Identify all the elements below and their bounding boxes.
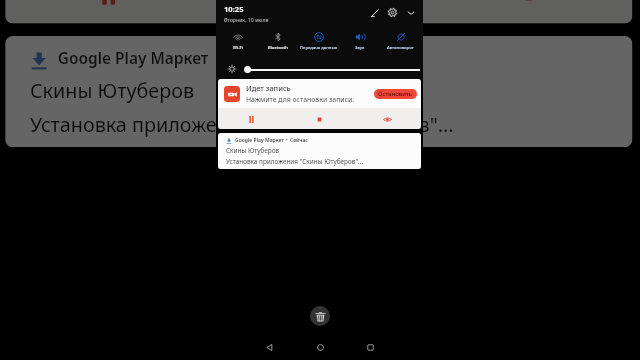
button[interactable]: Автоповорот [380, 32, 421, 51]
staticText: Скины Ютуберов [226, 146, 280, 155]
staticText: Google Play Маркет [235, 137, 284, 144]
staticText: 10:25 [224, 4, 244, 14]
staticText: Остановить [378, 90, 413, 98]
button[interactable]: Recents [359, 336, 381, 358]
button[interactable]: Передача данных [298, 32, 339, 51]
staticText: Нажмите для остановки записи. [246, 95, 355, 104]
button[interactable]: Collapse [404, 6, 417, 19]
staticText: Установка приложения "Скины Ютуберов"... [30, 110, 456, 138]
staticText: Вторник, 10 июля [224, 16, 269, 23]
staticText: Автоповорот [387, 45, 414, 51]
button[interactable]: Settings [386, 6, 399, 19]
button[interactable]: Stop [212, 0, 422, 14]
button[interactable]: Pause [218, 112, 285, 126]
button[interactable]: Остановить [374, 89, 417, 99]
staticText: Bluetooth [268, 45, 288, 51]
button[interactable]: Google Play Маркет [5, 36, 632, 147]
staticText: Сейчас [290, 137, 308, 144]
button[interactable]: Stop [285, 112, 353, 126]
staticText: Wi-Fi [233, 45, 243, 51]
button[interactable]: Back [258, 336, 280, 358]
staticText: • [215, 48, 221, 70]
button[interactable]: Bluetooth [258, 32, 298, 51]
button[interactable]: Home [309, 336, 331, 358]
staticText: Передача данных [300, 45, 338, 51]
staticText: Идет запись [246, 83, 291, 93]
staticText: Установка приложения "Скины Ютуберов"... [226, 157, 364, 166]
staticText: • [286, 137, 288, 144]
button[interactable]: Pause [5, 0, 212, 14]
staticText: Сейчас [228, 48, 283, 70]
button[interactable]: Звук [339, 32, 380, 51]
staticText: Звук [355, 45, 365, 51]
button[interactable]: Preview [422, 0, 632, 14]
staticText: Скины Ютуберов [30, 76, 197, 104]
button[interactable]: Delete [310, 306, 330, 326]
button[interactable]: Edit [368, 6, 381, 19]
button[interactable]: Preview [353, 112, 421, 126]
button[interactable]: Wi-Fi [218, 32, 258, 51]
button[interactable]: Google Play Маркет [218, 133, 421, 169]
staticText: Google Play Маркет [58, 48, 209, 70]
